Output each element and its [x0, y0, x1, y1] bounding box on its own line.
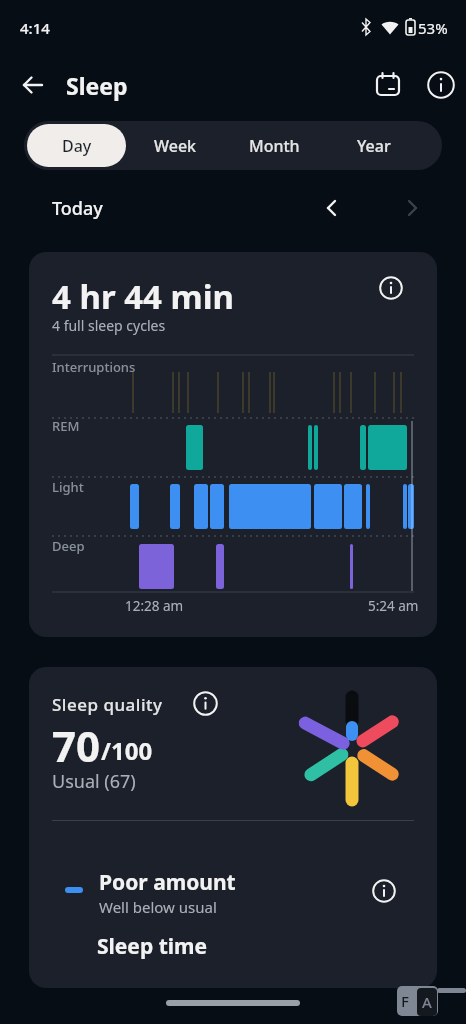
- button[interactable]: Month: [225, 124, 324, 167]
- staticText: 4 hr 44 min: [52, 274, 235, 319]
- staticText: Today: [52, 196, 103, 221]
- staticText: 53%: [418, 18, 448, 38]
- staticText: 5:24 am: [368, 597, 419, 615]
- staticText: Year: [357, 135, 391, 157]
- button[interactable]: [372, 68, 404, 100]
- staticText: 4 full sleep cycles: [52, 316, 166, 335]
- staticText: Interruptions: [52, 358, 136, 376]
- button[interactable]: [314, 190, 350, 226]
- staticText: Light: [52, 478, 84, 496]
- staticText: Sleep time: [97, 932, 208, 961]
- button[interactable]: Day: [27, 124, 126, 167]
- staticText: Day: [62, 135, 92, 157]
- button[interactable]: [193, 691, 218, 716]
- staticText: A: [422, 992, 432, 1012]
- button[interactable]: [16, 68, 50, 102]
- button[interactable]: Poor amount: [52, 863, 414, 919]
- staticText: 12:28 am: [125, 597, 184, 615]
- button[interactable]: [424, 68, 458, 102]
- staticText: /100: [101, 734, 153, 767]
- staticText: F: [401, 991, 409, 1011]
- staticText: Deep: [52, 537, 85, 555]
- staticText: REM: [52, 417, 80, 435]
- button[interactable]: [379, 276, 403, 300]
- staticText: Sleep: [66, 70, 128, 101]
- staticText: Poor amount: [99, 868, 236, 897]
- staticText: Usual (67): [52, 769, 136, 794]
- button[interactable]: Week: [126, 124, 225, 167]
- button[interactable]: Year: [324, 124, 423, 167]
- staticText: Week: [154, 135, 197, 157]
- staticText: Month: [249, 135, 300, 157]
- staticText: 70: [52, 717, 101, 774]
- button[interactable]: [394, 190, 430, 226]
- staticText: Sleep quality: [52, 693, 163, 716]
- staticText: 4:14: [20, 18, 50, 38]
- staticText: Well below usual: [99, 897, 217, 917]
